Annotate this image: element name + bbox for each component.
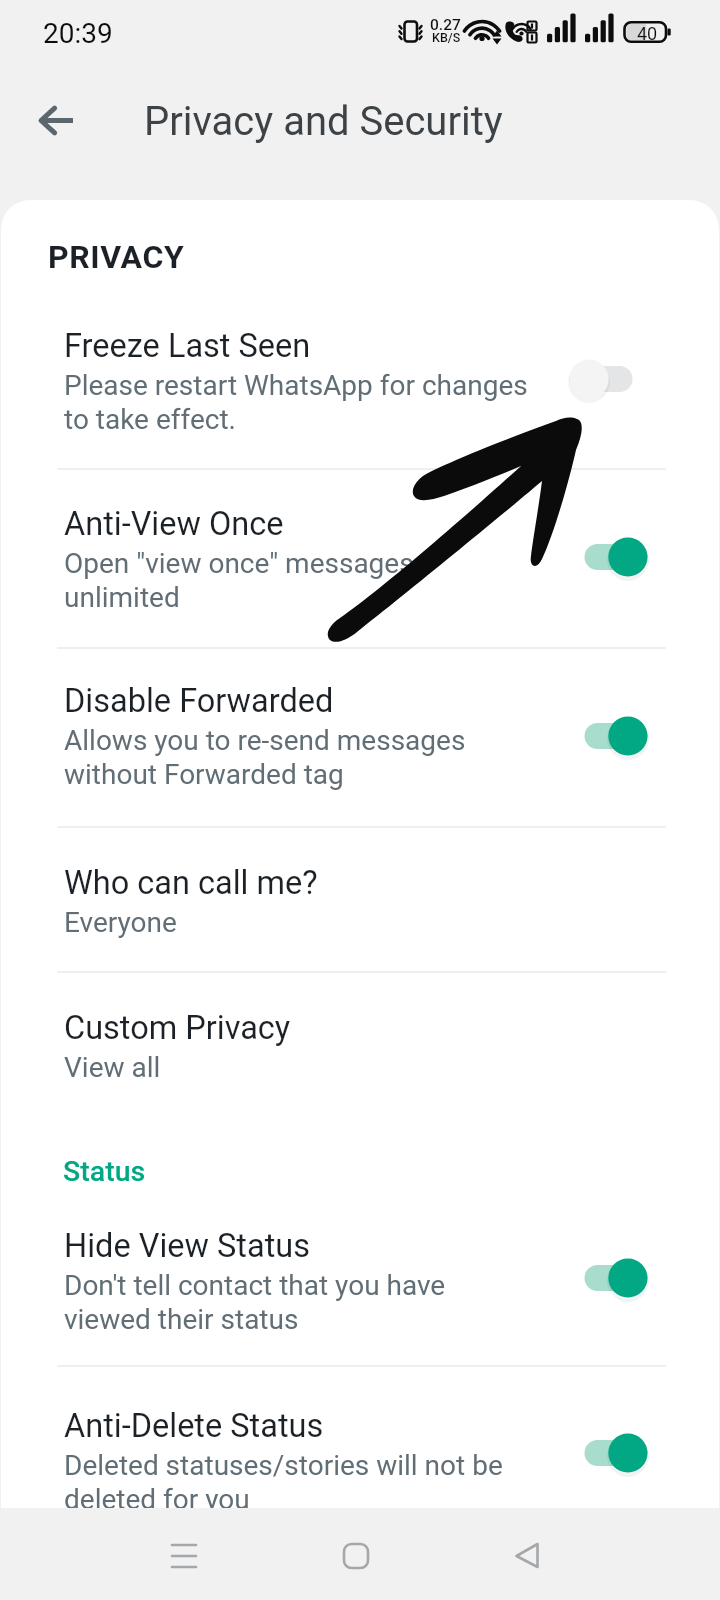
staticText: PRIVACY [48,238,185,276]
staticText: 0.27 [430,16,461,34]
button[interactable]: Back [483,1520,571,1588]
staticText: KB/S [432,30,461,45]
staticText: Everyone [64,906,177,939]
staticText: Status [63,1155,146,1188]
button[interactable]: Freeze Last Seen [1,292,719,468]
staticText: Hide View Status [64,1227,310,1265]
staticText: Anti-Delete Status [64,1407,324,1445]
button[interactable]: Hide View Status [1,1192,719,1365]
button[interactable]: Anti-View Once [1,468,719,647]
button[interactable]: Custom Privacy [1,971,719,1116]
button[interactable]: Anti-Delete Status [1,1365,719,1508]
button[interactable]: Toggle on [550,525,648,589]
staticText: Anti-View Once [64,505,284,543]
button[interactable]: Toggle on [550,1246,648,1310]
button[interactable]: Toggle off [550,347,648,411]
button[interactable]: Recent apps [140,1520,228,1588]
staticText: View all [64,1051,161,1084]
button[interactable]: Back [16,80,96,160]
staticText: Disable Forwarded [64,682,334,720]
button[interactable]: Toggle on [550,704,648,768]
staticText: Deleted statuses/stories will not be del… [64,1449,503,1508]
button[interactable]: Toggle on [550,1421,648,1485]
staticText: Who can call me? [64,864,318,902]
staticText: Custom Privacy [64,1009,291,1047]
button[interactable]: Who can call me? [1,826,719,971]
staticText: Don't tell contact that you have viewed … [64,1269,446,1336]
staticText: Freeze Last Seen [64,327,311,365]
staticText: Please restart WhatsApp for changes to t… [64,369,528,436]
staticText: Privacy and Security [144,98,503,145]
button[interactable]: Disable Forwarded [1,647,719,826]
staticText: Open "view once" messages unlimited [64,547,414,614]
staticText: 20:39 [43,17,113,50]
staticText: Allows you to re-send messages without F… [64,724,466,791]
staticText: 40 [637,23,658,44]
button[interactable]: Home [312,1520,400,1588]
